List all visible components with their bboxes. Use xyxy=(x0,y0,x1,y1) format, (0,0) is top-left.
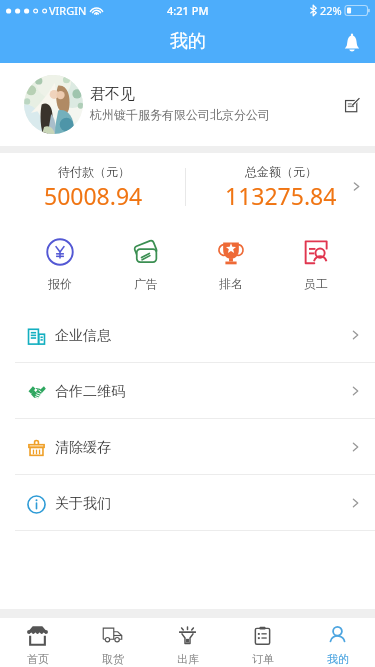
staticText: 113275.84 xyxy=(225,180,337,211)
button[interactable]: 君不见 xyxy=(0,63,375,146)
staticText: 员工 xyxy=(304,276,328,291)
staticText: 4:21 PM xyxy=(167,3,209,18)
staticText: 我的 xyxy=(327,652,349,666)
staticText: 50008.94 xyxy=(44,180,143,211)
button[interactable]: 排名 xyxy=(188,238,273,291)
button[interactable]: 关于我们 xyxy=(0,475,375,530)
staticText: 订单 xyxy=(252,652,274,666)
button[interactable]: Edit profile xyxy=(332,83,372,127)
button[interactable]: Notifications xyxy=(331,20,375,63)
button[interactable]: 清除缓存 xyxy=(0,419,375,474)
staticText: 首页 xyxy=(27,652,49,666)
button[interactable]: 员工 xyxy=(273,238,358,291)
button[interactable]: 我的 xyxy=(300,619,375,666)
staticText: 总金额（元） xyxy=(245,164,317,179)
button[interactable]: 报价 xyxy=(17,238,103,291)
staticText: 报价 xyxy=(48,276,72,291)
staticText: 杭州镀千服务有限公司北京分公司 xyxy=(90,107,270,122)
staticText: 排名 xyxy=(219,276,243,291)
button[interactable]: 订单 xyxy=(225,619,300,666)
staticText: 关于我们 xyxy=(55,495,111,513)
button[interactable]: 合作二维码 xyxy=(0,363,375,418)
button[interactable]: 首页 xyxy=(0,619,75,666)
staticText: 待付款（元） xyxy=(58,164,130,179)
staticText: 取货 xyxy=(102,652,124,666)
button[interactable]: 广告 xyxy=(103,238,188,291)
staticText: 清除缓存 xyxy=(55,439,111,457)
staticText: 出库 xyxy=(177,652,199,666)
button[interactable]: 企业信息 xyxy=(0,307,375,362)
staticText: 广告 xyxy=(134,276,158,291)
staticText: 我的 xyxy=(170,30,206,53)
button[interactable]: 出库 xyxy=(150,619,225,666)
staticText: 合作二维码 xyxy=(55,383,125,401)
staticText: 企业信息 xyxy=(55,327,111,345)
button[interactable]: 待付款（元） xyxy=(0,153,375,212)
button[interactable]: 取货 xyxy=(75,619,150,666)
staticText: VIRGIN xyxy=(49,3,87,18)
staticText: 22% xyxy=(320,3,342,18)
staticText: 君不见 xyxy=(90,85,135,104)
